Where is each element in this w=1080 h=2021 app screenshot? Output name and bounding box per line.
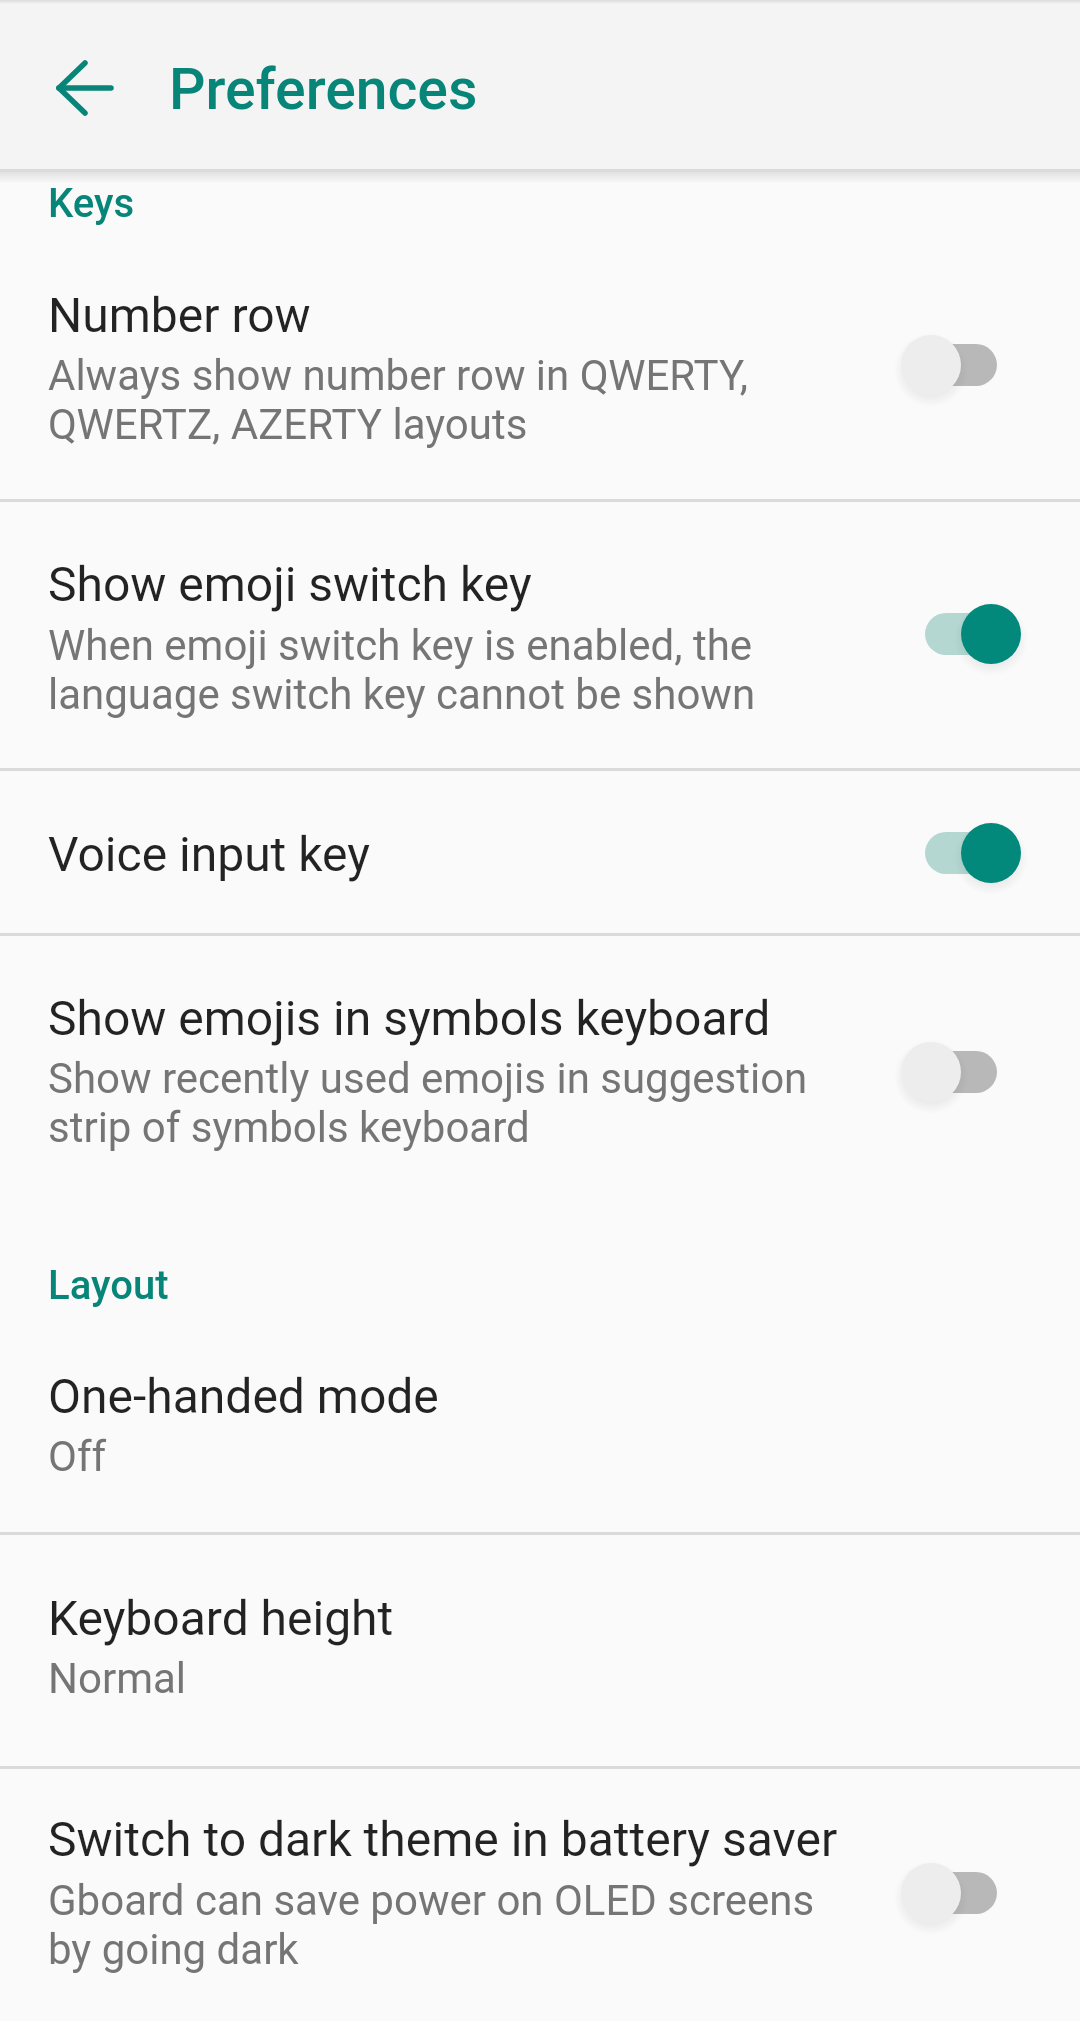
staticText: Show recently used emojis in suggestion …	[48, 1054, 808, 1152]
staticText: Layout	[48, 1262, 169, 1309]
staticText: Always show number row in QWERTY, QWERTZ…	[48, 351, 749, 449]
staticText: Normal	[48, 1654, 187, 1703]
staticText: Voice input key	[48, 826, 370, 882]
staticText: Preferences	[169, 56, 478, 120]
button[interactable]: Show emojis in symbols keyboard	[0, 936, 1080, 1207]
button[interactable]: Number row	[0, 232, 1080, 499]
button[interactable]: Voice input key	[0, 771, 1080, 933]
button[interactable]: Show emoji switch key	[0, 502, 1080, 768]
button[interactable]	[30, 56, 140, 120]
staticText: Number row	[48, 287, 311, 343]
staticText: Show emojis in symbols keyboard	[48, 990, 771, 1046]
staticText: Keyboard height	[48, 1590, 394, 1646]
staticText: Gboard can save power on OLED screens by…	[48, 1876, 815, 1974]
button[interactable]: One-handed mode	[0, 1330, 1080, 1532]
button[interactable]: Switch to dark theme in battery saver	[0, 1769, 1080, 2021]
staticText: Off	[48, 1432, 107, 1481]
staticText: Show emoji switch key	[48, 556, 532, 612]
button[interactable]: Keyboard height	[0, 1535, 1080, 1766]
staticText: Keys	[48, 180, 135, 227]
staticText: Switch to dark theme in battery saver	[48, 1811, 838, 1867]
staticText: When emoji switch key is enabled, the la…	[48, 621, 756, 719]
staticText: One-handed mode	[48, 1368, 439, 1424]
